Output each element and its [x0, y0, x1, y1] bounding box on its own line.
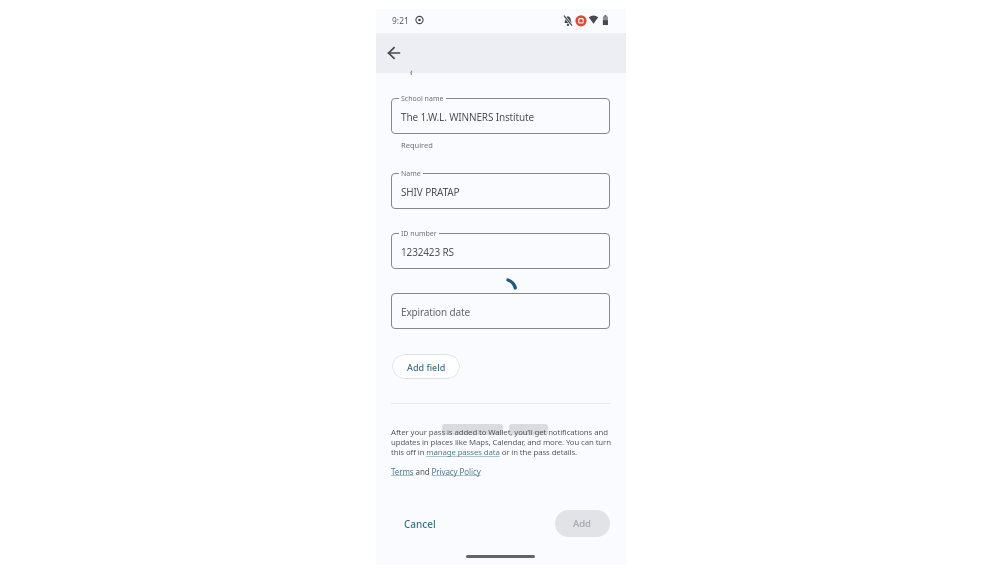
staticText: ID number: [401, 229, 437, 239]
staticText: Add: [573, 517, 592, 530]
staticText: After your pass is added to Wallet, you’…: [391, 427, 608, 438]
staticText: 9:21: [392, 15, 409, 27]
button[interactable]: 1232423 RS: [391, 233, 610, 269]
staticText: 1232423 RS: [401, 245, 454, 259]
staticText: Name: [401, 169, 421, 179]
staticText: Add field: [407, 361, 446, 373]
button[interactable]: this off in manage passes data or in the…: [391, 447, 578, 458]
button[interactable]: Terms and Privacy Policy: [391, 466, 481, 477]
button[interactable]: Expiration date: [391, 293, 610, 329]
button[interactable]: SHIV PRATAP: [391, 173, 610, 209]
staticText: The 1.W.L. WINNERS Institute: [401, 110, 534, 124]
staticText: updates in places like Maps, Calendar, a…: [391, 437, 611, 448]
staticText: Cancel: [404, 517, 436, 531]
staticText: Expiration date: [401, 305, 470, 319]
staticText: SHIV PRATAP: [401, 185, 460, 199]
button[interactable]: Add: [555, 510, 610, 537]
button[interactable]: [382, 41, 406, 65]
staticText: School name: [401, 94, 444, 104]
button[interactable]: Cancel: [396, 511, 444, 537]
staticText: Required: [401, 140, 433, 150]
button[interactable]: Add field: [392, 354, 460, 379]
button[interactable]: The 1.W.L. WINNERS Institute: [391, 98, 610, 134]
